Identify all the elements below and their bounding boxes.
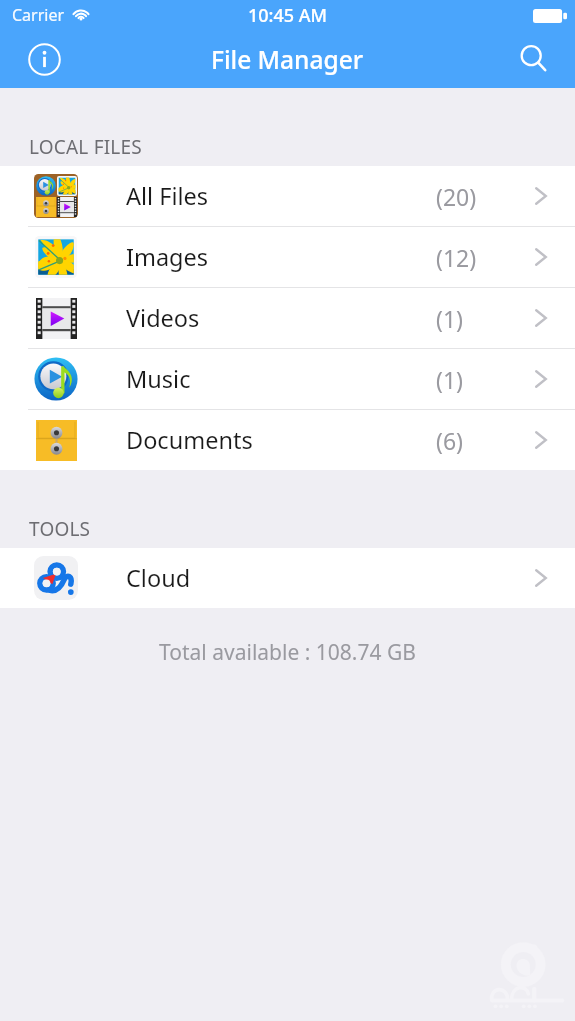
staticText: LOCAL FILES [29, 134, 142, 160]
staticText: All Files [126, 180, 209, 212]
button[interactable]: Videos [0, 288, 575, 348]
button[interactable]: Info [20, 35, 68, 83]
button[interactable]: Cloud [0, 548, 575, 608]
staticText: 10:45 AM [248, 3, 328, 28]
staticText: Images [126, 241, 209, 273]
staticText: Carrier [12, 4, 65, 26]
staticText: Total available : 108.74 GB [0, 638, 575, 667]
staticText: TOOLS [29, 516, 91, 542]
button[interactable]: Search [510, 35, 558, 83]
button[interactable]: Documents [0, 410, 575, 470]
button[interactable]: All Files [0, 166, 575, 226]
staticText: File Manager [211, 43, 364, 76]
staticText: (20) [436, 181, 477, 212]
staticText: Documents [126, 424, 253, 456]
staticText: Cloud [126, 562, 191, 594]
staticText: Videos [126, 302, 200, 334]
staticText: (6) [436, 425, 463, 456]
button[interactable]: Images [0, 227, 575, 287]
staticText: (1) [436, 303, 463, 334]
staticText: Music [126, 363, 191, 395]
button[interactable]: Music [0, 349, 575, 409]
staticText: (12) [436, 242, 477, 273]
staticText: (1) [436, 364, 463, 395]
